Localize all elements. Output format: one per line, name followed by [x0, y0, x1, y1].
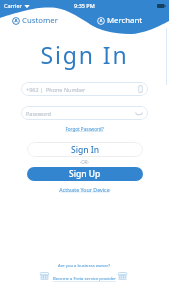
other: Merchant: [40, 271, 49, 280]
button[interactable]: Forgot Password?: [0, 126, 169, 132]
staticText: -OR-: [0, 159, 169, 165]
staticText: Carrier: [4, 2, 22, 9]
staticText: Customer: [22, 15, 58, 26]
other: Phone number: [138, 85, 143, 93]
staticText: Sign Up: [69, 168, 101, 180]
staticText: Merchant: [107, 15, 143, 26]
button[interactable]: Customer: [12, 15, 58, 26]
staticText: Password: [26, 110, 51, 117]
button[interactable]: +962 | Phone Number: [21, 82, 148, 96]
staticText: Are you a business owner?: [58, 263, 111, 269]
other: Merchant: [118, 271, 127, 280]
button[interactable]: Sign In: [27, 142, 143, 157]
other: Wifi: [24, 3, 30, 9]
staticText: Sign In: [0, 39, 169, 70]
button[interactable]: Password: [21, 106, 148, 120]
button[interactable]: Become a Freta service provider: [53, 276, 116, 282]
button[interactable]: Merchant: [97, 15, 143, 26]
button[interactable]: Activate Your Device: [0, 186, 169, 193]
staticText: Sign In: [71, 144, 100, 156]
button[interactable]: Sign Up: [27, 167, 143, 181]
staticText: +962 | Phone Number: [26, 86, 86, 93]
other: Battery: [157, 4, 166, 8]
other: Show password: [135, 110, 143, 116]
staticText: 9:35 PM: [74, 2, 95, 9]
